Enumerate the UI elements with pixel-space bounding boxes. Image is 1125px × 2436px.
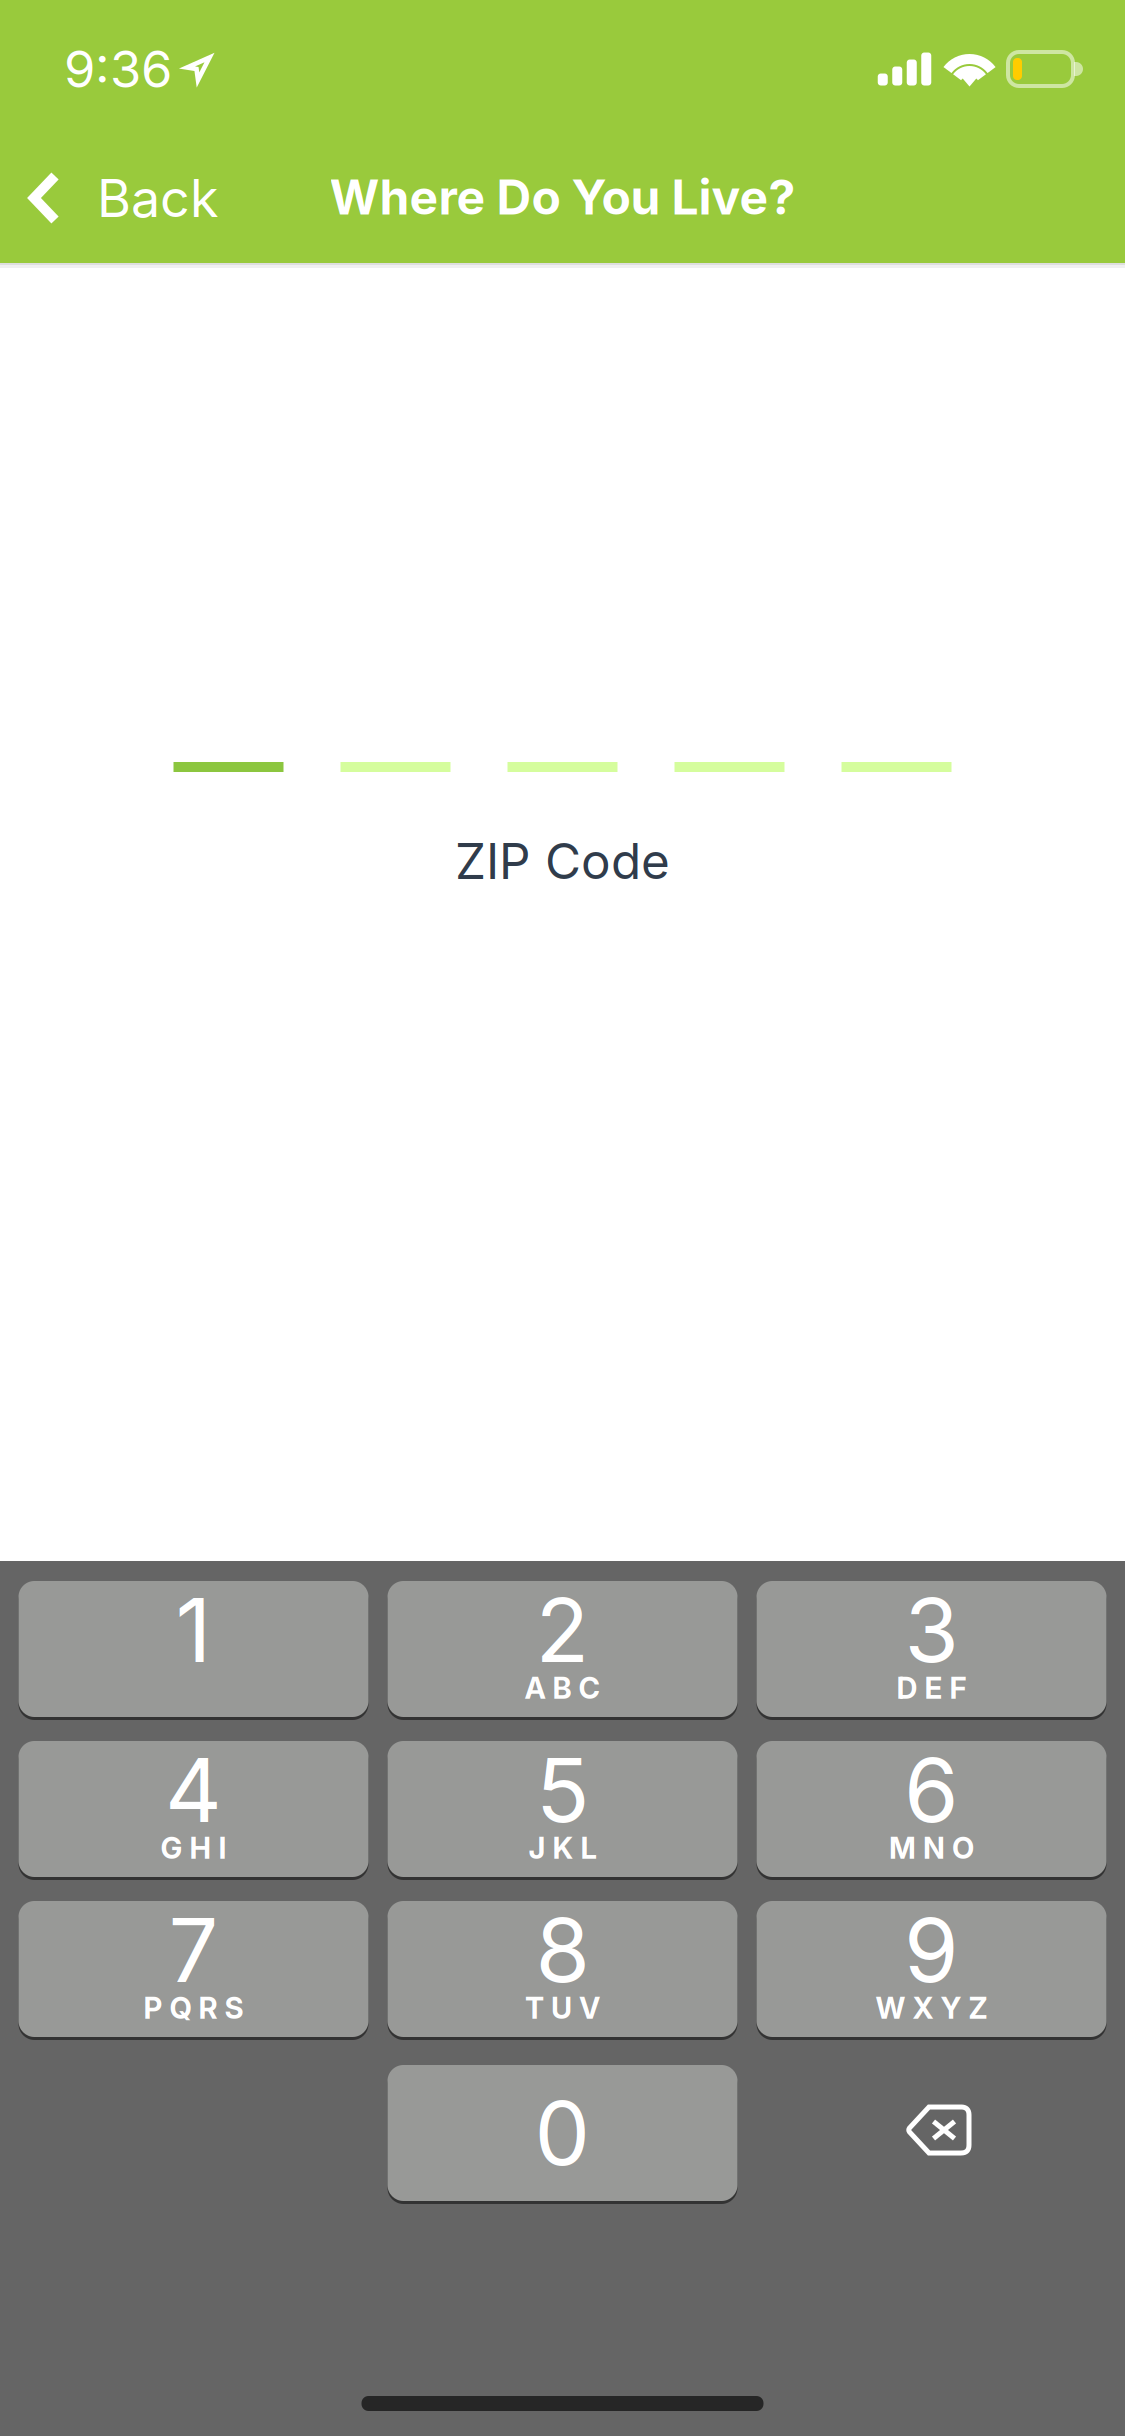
button[interactable]: 4 — [18, 1741, 368, 1877]
staticText: M N O — [889, 1830, 974, 1866]
staticText: 5 — [536, 1737, 589, 1843]
button[interactable]: 3 — [756, 1581, 1106, 1717]
button[interactable]: 2 — [387, 1581, 737, 1717]
staticText: ZIP Code — [455, 831, 670, 891]
staticText: Where Do You Live? — [329, 168, 795, 226]
staticText: 4 — [165, 1737, 222, 1843]
staticText: 9 — [904, 1897, 959, 2003]
staticText: D E F — [896, 1670, 966, 1706]
button[interactable]: 5 — [387, 1741, 737, 1877]
staticText: 1 — [175, 1577, 211, 1683]
staticText: P Q R S — [143, 1990, 243, 2026]
button[interactable]: 9 — [756, 1901, 1106, 2037]
button[interactable]: 8 — [387, 1901, 737, 2037]
button[interactable]: 0 — [387, 2065, 737, 2201]
staticText: 8 — [535, 1897, 589, 2003]
button[interactable]: 6 — [756, 1741, 1106, 1877]
staticText: A B C — [524, 1670, 600, 1706]
staticText: 6 — [904, 1737, 959, 1843]
staticText: Back — [97, 166, 219, 229]
staticText: 3 — [904, 1577, 958, 1683]
button[interactable]: 7 — [18, 1901, 368, 2037]
button[interactable]: Back — [0, 152, 290, 244]
staticText: W X Y Z — [875, 1990, 987, 2026]
staticText: 7 — [168, 1897, 218, 2003]
staticText: 0 — [534, 2080, 590, 2186]
staticText: 9:36 — [64, 38, 172, 100]
button[interactable]: Delete — [756, 2065, 1106, 2201]
button[interactable]: 1 — [18, 1581, 368, 1717]
staticText: 2 — [535, 1577, 589, 1683]
staticText: T U V — [525, 1990, 600, 2026]
staticText: G H I — [160, 1830, 226, 1866]
staticText: J K L — [528, 1830, 596, 1866]
